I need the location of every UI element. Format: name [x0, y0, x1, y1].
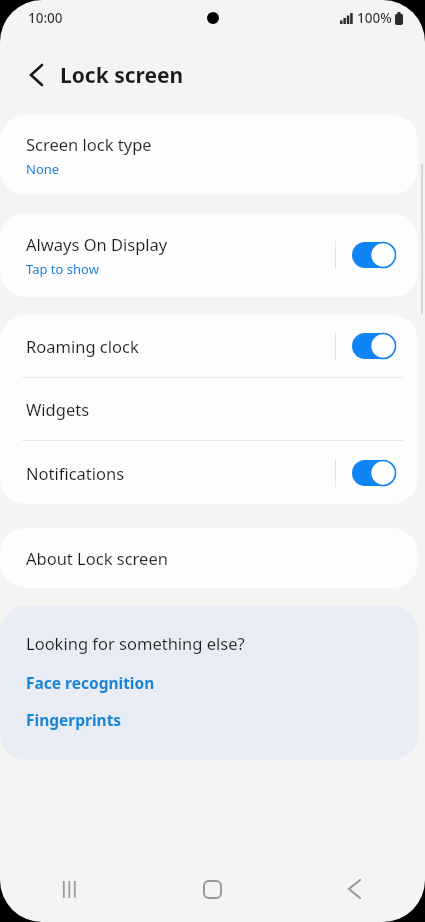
button[interactable]: Toggle on	[352, 333, 396, 359]
button[interactable]: Home	[141, 856, 283, 922]
button[interactable]: Always On Display	[0, 213, 418, 297]
button[interactable]: Back	[14, 53, 58, 97]
staticText: Screen lock type	[26, 133, 152, 155]
staticText: Lock screen	[60, 61, 184, 90]
button[interactable]: Screen lock type	[0, 115, 418, 195]
staticText: None	[26, 160, 60, 178]
button[interactable]: About Lock screen	[0, 528, 418, 588]
button[interactable]: Toggle on	[352, 460, 396, 486]
button[interactable]: Toggle on	[352, 242, 396, 268]
staticText: 10:00	[28, 9, 63, 27]
button[interactable]: Notifications	[0, 441, 418, 504]
button[interactable]: Face recognition	[26, 672, 155, 693]
staticText: Face recognition	[26, 672, 155, 693]
staticText: Tap to show	[26, 260, 99, 278]
staticText: Looking for something else?	[26, 632, 245, 654]
staticText: Widgets	[26, 398, 90, 420]
staticText: About Lock screen	[26, 547, 168, 569]
button[interactable]: Fingerprints	[26, 709, 122, 730]
staticText: Always On Display	[26, 233, 168, 255]
button[interactable]: Recent apps	[0, 856, 141, 922]
staticText: Fingerprints	[26, 709, 122, 730]
staticText: Notifications	[26, 462, 125, 484]
button[interactable]: Widgets	[0, 378, 418, 440]
staticText: 100%	[357, 9, 392, 27]
button[interactable]: Roaming clock	[0, 315, 418, 377]
staticText: Roaming clock	[26, 335, 139, 357]
button[interactable]: Back	[283, 856, 425, 922]
